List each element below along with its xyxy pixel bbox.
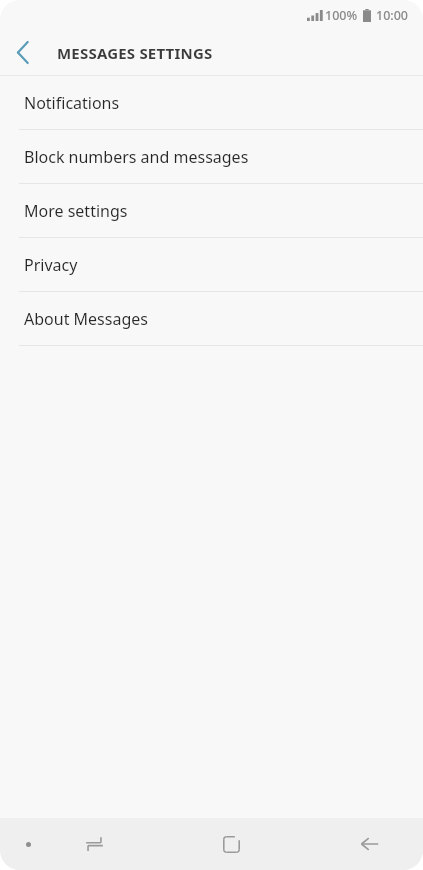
button[interactable]: Back: [331, 818, 407, 870]
button[interactable]: Back: [0, 30, 46, 75]
staticText: MESSAGES SETTINGS: [57, 43, 213, 63]
staticText: Block numbers and messages: [24, 146, 249, 168]
button[interactable]: Recent apps: [56, 818, 132, 870]
staticText: 10:00: [376, 7, 409, 24]
button[interactable]: Menu indicator: [8, 824, 48, 864]
staticText: 100%: [325, 7, 358, 24]
staticText: About Messages: [24, 308, 148, 330]
button[interactable]: More settings: [0, 184, 423, 237]
button[interactable]: Privacy: [0, 238, 423, 291]
staticText: Notifications: [24, 92, 120, 114]
button[interactable]: Notifications: [0, 76, 423, 129]
staticText: More settings: [24, 200, 128, 222]
button[interactable]: Home: [193, 818, 269, 870]
staticText: Privacy: [24, 254, 78, 276]
button[interactable]: Block numbers and messages: [0, 130, 423, 183]
button[interactable]: About Messages: [0, 292, 423, 345]
